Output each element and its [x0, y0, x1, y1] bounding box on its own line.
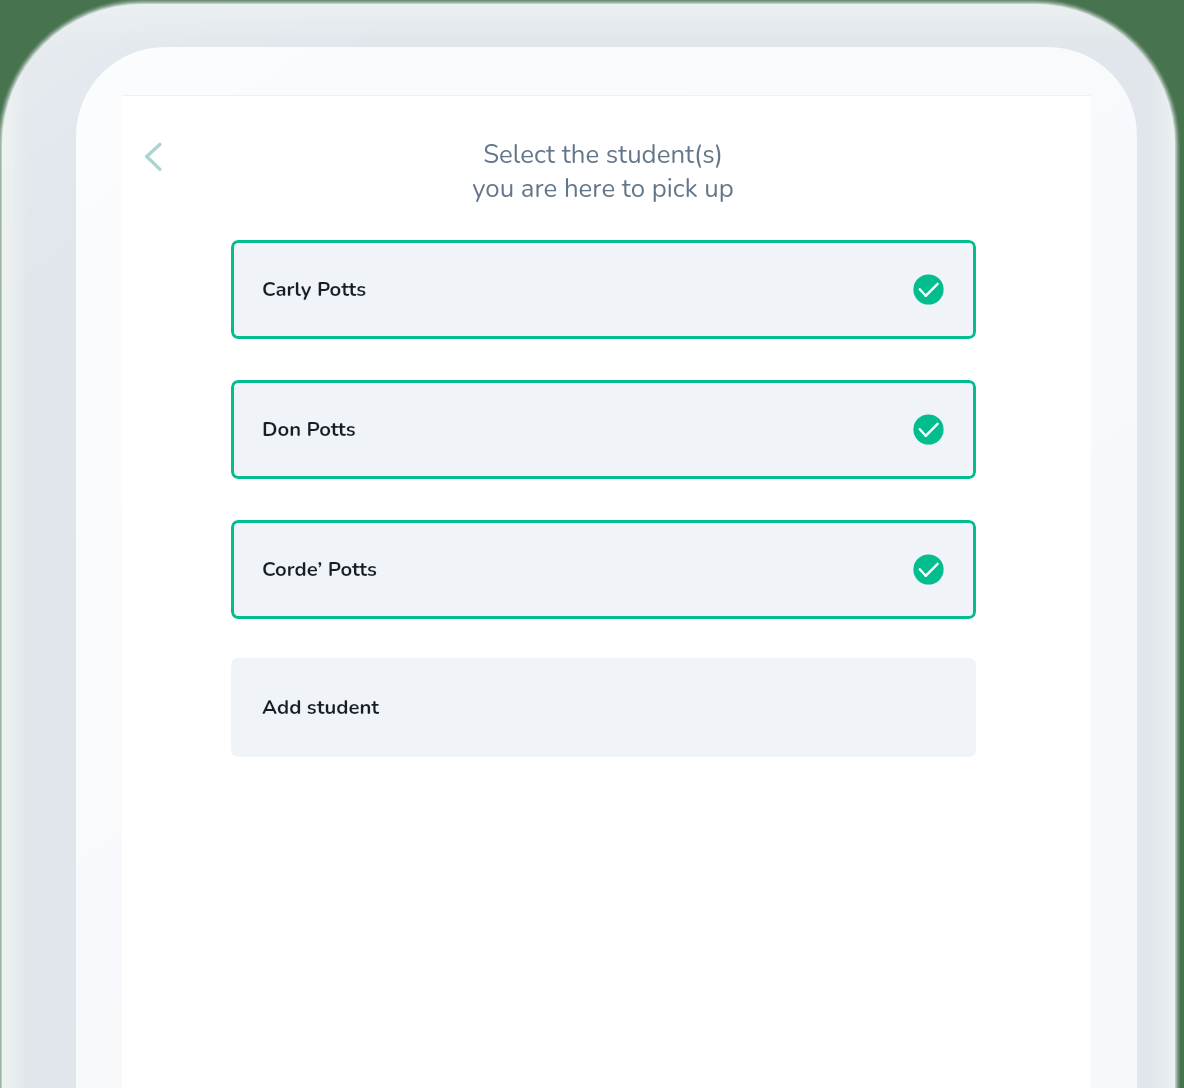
staticText: Add student: [262, 693, 380, 721]
staticText: Corde’ Potts: [262, 555, 377, 583]
staticText: Carly Potts: [262, 275, 367, 303]
button[interactable]: Corde’ Potts: [231, 520, 976, 619]
staticText: Select the student(s) you are here to pi…: [472, 137, 734, 206]
button[interactable]: Carly Potts: [231, 240, 976, 339]
button[interactable]: Don Potts: [231, 380, 976, 479]
button[interactable]: Back: [124, 131, 182, 189]
staticText: Don Potts: [262, 415, 356, 443]
button[interactable]: Add student: [231, 658, 976, 757]
